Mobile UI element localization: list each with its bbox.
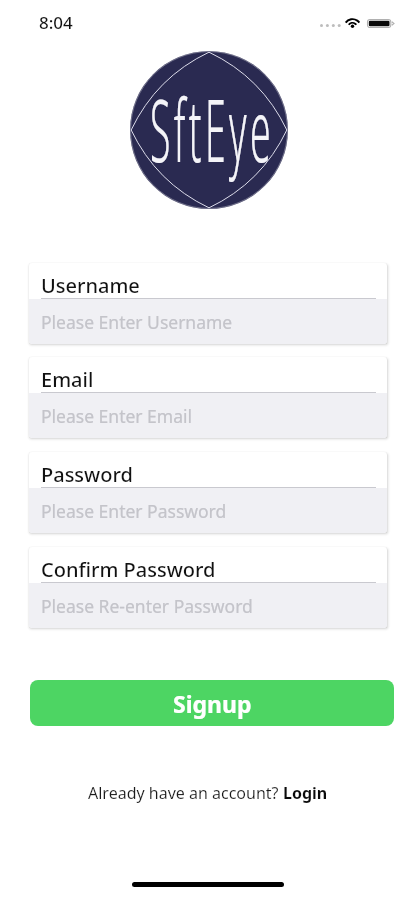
staticText: Please Enter Email (41, 404, 193, 428)
button[interactable]: Confirm Password (29, 547, 387, 628)
button[interactable]: Login (283, 782, 328, 804)
staticText: Already have an account? (88, 782, 283, 804)
button[interactable]: Username (29, 263, 387, 344)
other: Cellular signal (320, 22, 340, 29)
staticText: 8:04 (39, 11, 73, 34)
staticText: Please Enter Username (41, 310, 233, 334)
other: Wi-Fi (344, 16, 361, 29)
other: Battery full (367, 19, 394, 28)
staticText: SftEye (126, 69, 298, 187)
staticText: Please Re-enter Password (41, 594, 253, 618)
staticText: Confirm Password (41, 556, 216, 583)
staticText: Password (41, 461, 133, 488)
staticText: Signup (173, 688, 252, 719)
button[interactable]: Password (29, 452, 387, 533)
staticText: Email (41, 366, 94, 393)
button[interactable]: Email (29, 357, 387, 438)
staticText: Please Enter Password (41, 499, 227, 523)
staticText: Username (41, 272, 140, 299)
button[interactable]: Signup (30, 680, 394, 726)
staticText: Login (283, 782, 328, 804)
